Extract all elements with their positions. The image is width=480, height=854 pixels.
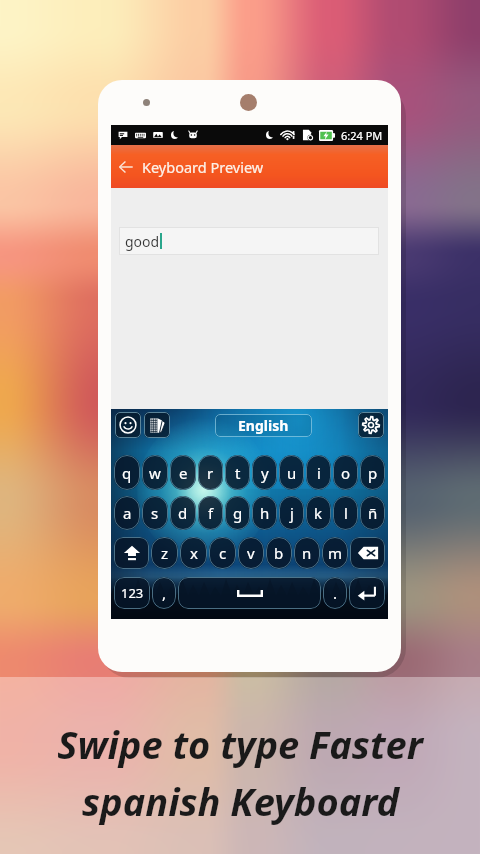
- button[interactable]: t: [225, 455, 250, 490]
- staticText: 6:24 PM: [341, 128, 383, 143]
- staticText: e: [179, 463, 188, 483]
- staticText: r: [207, 463, 214, 483]
- staticText: c: [219, 543, 227, 563]
- button[interactable]: d: [170, 496, 196, 530]
- button[interactable]: Shift: [114, 537, 149, 569]
- staticText: Swipe to type Faster: [57, 718, 423, 770]
- staticText: u: [287, 463, 297, 483]
- button[interactable]: m: [322, 537, 348, 569]
- other: Theme: [149, 417, 166, 434]
- button[interactable]: p: [360, 455, 385, 490]
- button[interactable]: s: [142, 496, 168, 530]
- button[interactable]: q: [114, 455, 140, 490]
- staticText: English: [238, 416, 289, 435]
- staticText: Keyboard Preview: [142, 157, 264, 177]
- button[interactable]: v: [238, 537, 264, 569]
- staticText: o: [341, 463, 351, 483]
- staticText: good: [125, 232, 160, 251]
- button[interactable]: l: [333, 496, 358, 530]
- staticText: v: [247, 543, 255, 563]
- staticText: t: [235, 463, 241, 483]
- staticText: p: [368, 463, 378, 483]
- staticText: j: [290, 503, 294, 523]
- button[interactable]: x: [180, 537, 207, 569]
- staticText: ,: [162, 583, 167, 603]
- button[interactable]: h: [252, 496, 277, 530]
- staticText: b: [274, 543, 284, 563]
- staticText: s: [151, 503, 159, 523]
- staticText: m: [328, 543, 343, 563]
- staticText: z: [161, 543, 169, 563]
- button[interactable]: Space: [178, 577, 321, 609]
- staticText: g: [233, 503, 243, 523]
- button[interactable]: j: [279, 496, 304, 530]
- staticText: spanish Keyboard: [82, 775, 399, 827]
- button[interactable]: o: [333, 455, 358, 490]
- button[interactable]: Backspace: [350, 537, 385, 569]
- button[interactable]: e: [170, 455, 196, 490]
- button[interactable]: ñ: [360, 496, 385, 530]
- button[interactable]: c: [209, 537, 236, 569]
- button[interactable]: y: [252, 455, 277, 490]
- staticText: n: [302, 543, 312, 563]
- button[interactable]: Back: [113, 154, 139, 180]
- button[interactable]: n: [294, 537, 320, 569]
- staticText: .: [333, 583, 338, 603]
- button[interactable]: Theme: [144, 412, 170, 438]
- button[interactable]: 123: [114, 577, 150, 609]
- staticText: l: [344, 503, 348, 523]
- staticText: k: [314, 503, 323, 523]
- staticText: ñ: [368, 503, 378, 523]
- button[interactable]: .: [323, 577, 347, 609]
- staticText: q: [122, 463, 132, 483]
- button[interactable]: ,: [152, 577, 176, 609]
- other: Emoji: [119, 416, 137, 434]
- button[interactable]: u: [279, 455, 304, 490]
- staticText: f: [208, 503, 214, 523]
- button[interactable]: b: [266, 537, 292, 569]
- button[interactable]: Settings: [358, 412, 384, 438]
- staticText: w: [149, 463, 161, 483]
- button[interactable]: k: [306, 496, 331, 530]
- other: Settings: [362, 416, 380, 434]
- staticText: d: [178, 503, 188, 523]
- staticText: a: [123, 503, 132, 523]
- button[interactable]: z: [151, 537, 178, 569]
- button[interactable]: f: [198, 496, 223, 530]
- button[interactable]: i: [306, 455, 331, 490]
- staticText: x: [190, 543, 198, 563]
- button[interactable]: r: [198, 455, 223, 490]
- staticText: i: [317, 463, 321, 483]
- button[interactable]: Emoji: [115, 412, 141, 438]
- button[interactable]: Enter: [349, 577, 385, 609]
- button[interactable]: English: [215, 414, 312, 437]
- button[interactable]: a: [114, 496, 140, 530]
- staticText: 123: [121, 584, 144, 602]
- button[interactable]: w: [142, 455, 168, 490]
- staticText: y: [261, 463, 269, 483]
- staticText: h: [260, 503, 270, 523]
- button[interactable]: g: [225, 496, 250, 530]
